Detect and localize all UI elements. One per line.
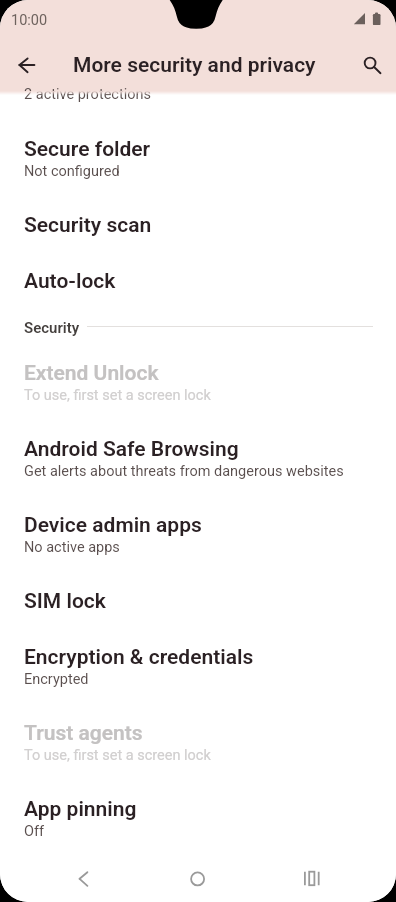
staticText: More security and privacy [73,53,316,78]
staticText: Off [24,823,45,840]
staticText: Security scan [24,213,152,238]
staticText: Secure folder [24,137,151,162]
staticText: Android Safe Browsing [24,437,239,462]
staticText: Trust agents [24,721,143,746]
button[interactable]: App pinning [0,780,396,856]
staticText: To use, first set a screen lock [24,747,211,764]
button[interactable]: Device admin apps [0,496,396,572]
staticText: 2 active protections [24,86,151,103]
button[interactable]: Encryption & credentials [0,628,396,704]
staticText: Auto-lock [24,269,116,294]
staticText: Security [24,319,80,337]
staticText: Encryption & credentials [24,645,254,670]
staticText: Extend Unlock [24,361,159,386]
button[interactable]: Secure folder [0,120,396,196]
button[interactable]: Auto-lock [0,252,396,308]
button[interactable]: Recent apps [289,856,335,902]
staticText: SIM lock [24,589,106,614]
staticText: No active apps [24,539,120,556]
button[interactable]: Search [347,41,394,88]
staticText: Encrypted [24,671,89,688]
staticText: To use, first set a screen lock [24,387,211,404]
button[interactable]: Navigate up [3,41,50,88]
staticText: Device admin apps [24,513,202,538]
staticText: Get alerts about threats from dangerous … [24,463,344,480]
button[interactable]: Back [60,856,106,902]
button[interactable]: Extend Unlock [0,344,396,420]
staticText: Not configured [24,163,120,180]
button[interactable]: Home [175,856,221,902]
button[interactable]: Trust agents [0,704,396,780]
button[interactable]: Security scan [0,196,396,252]
staticText: 10:00 [11,12,48,29]
staticText: App pinning [24,797,137,822]
button[interactable]: SIM lock [0,572,396,628]
button[interactable]: Android Safe Browsing [0,420,396,496]
